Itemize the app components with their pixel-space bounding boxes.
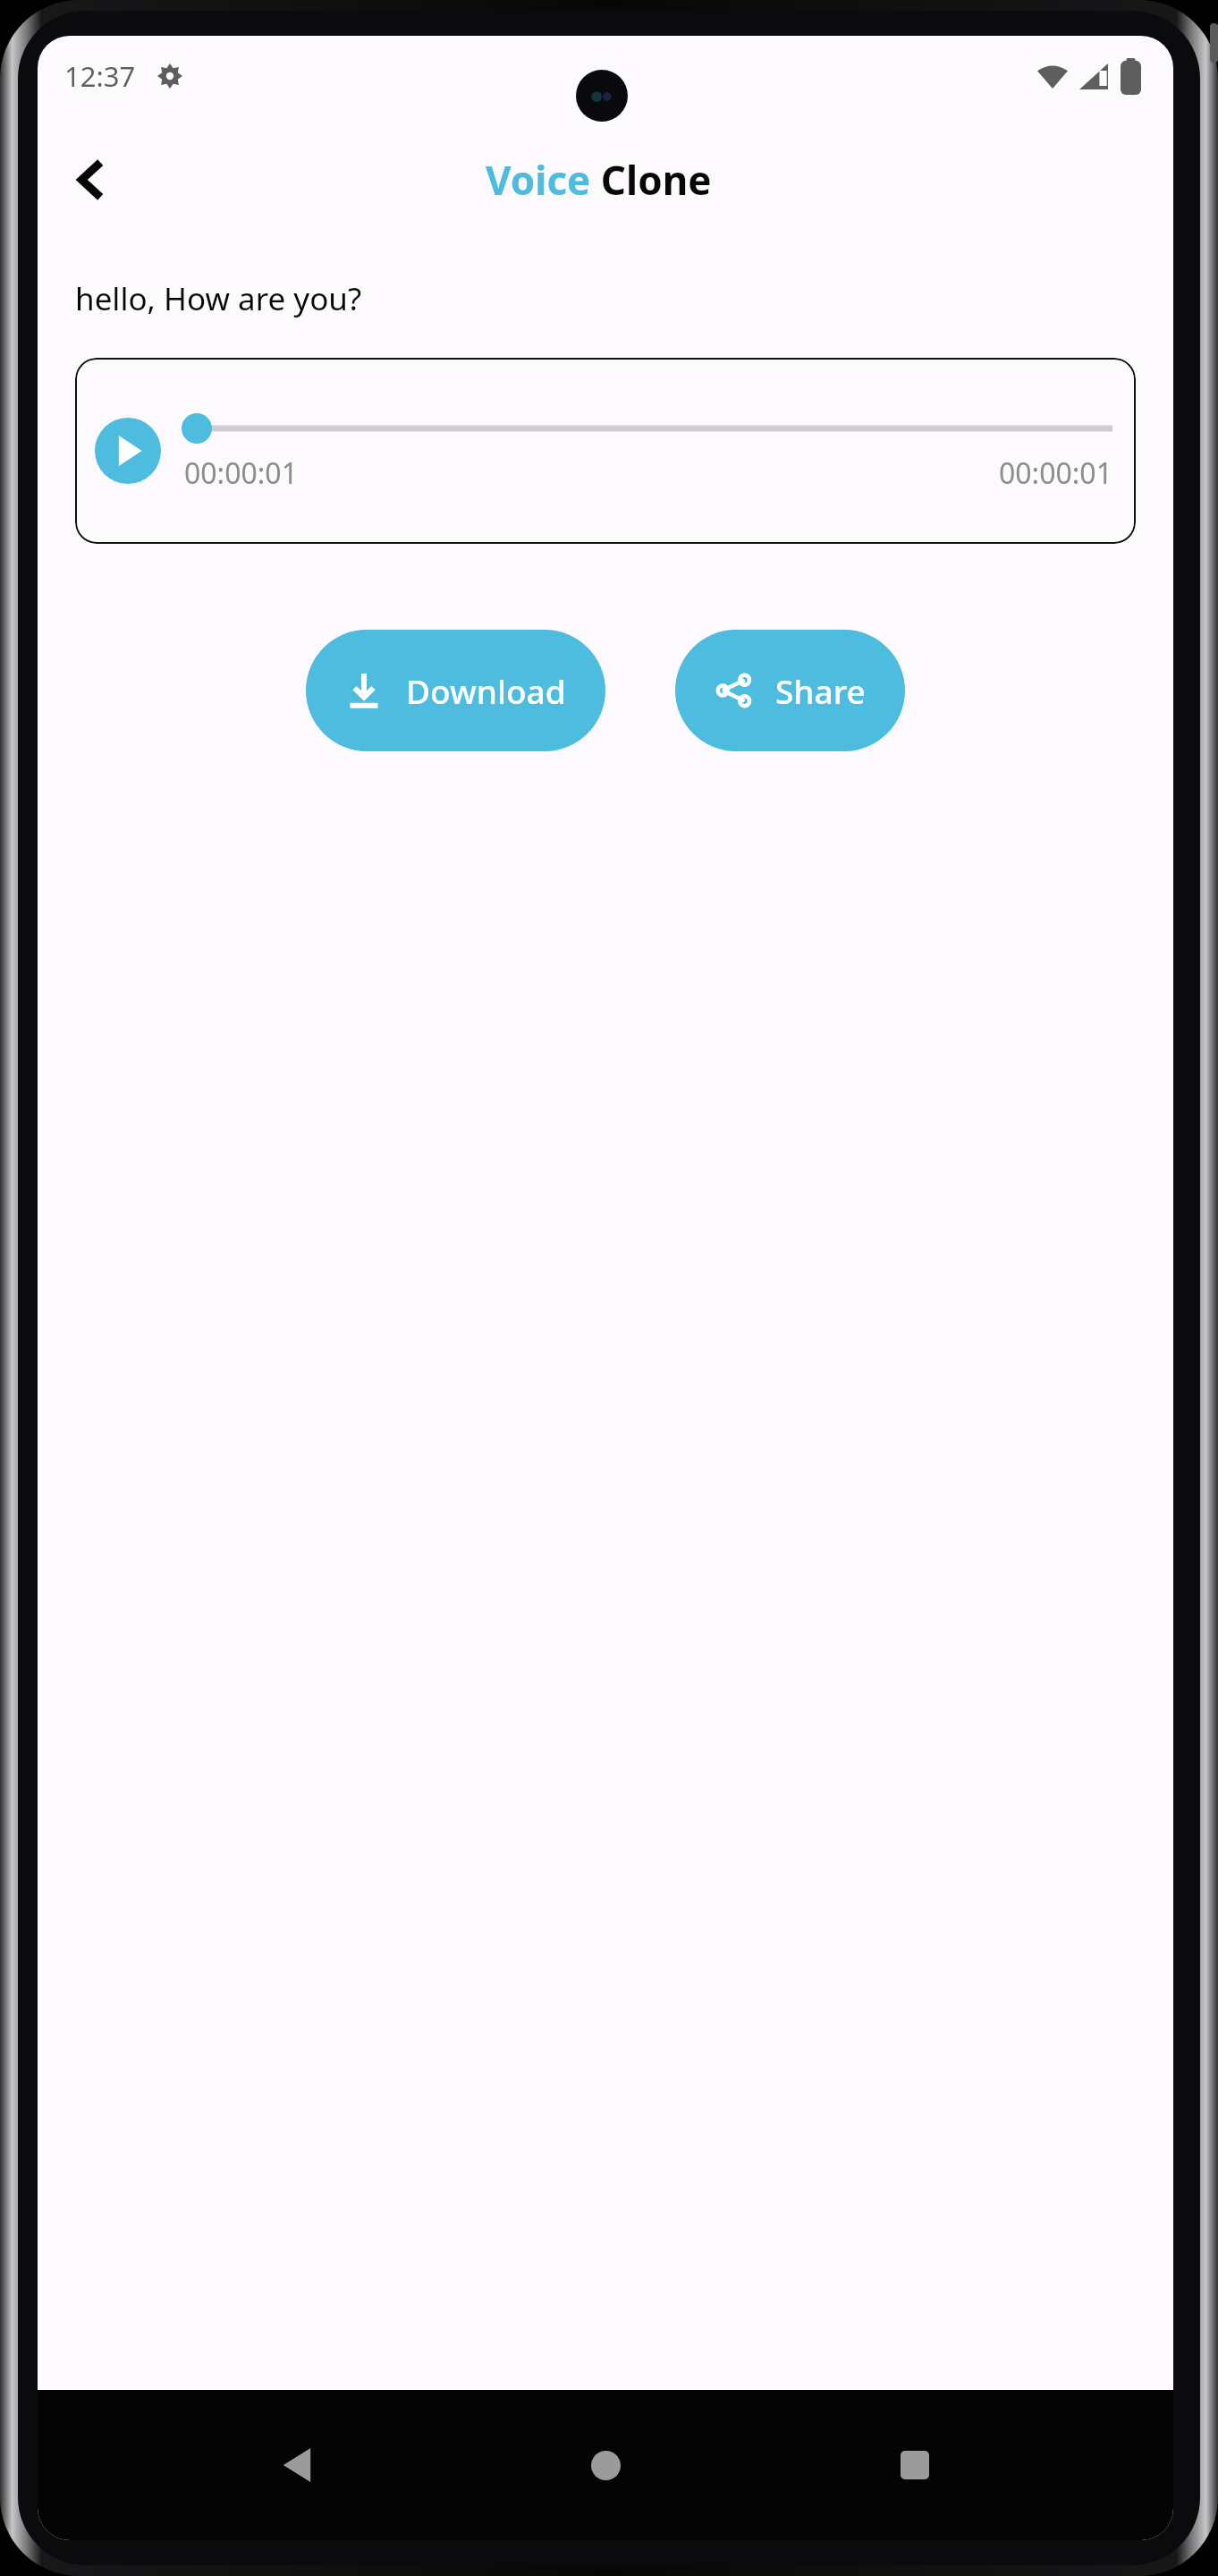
button[interactable]: Share: [675, 630, 905, 751]
staticText: 00:00:01: [184, 453, 298, 493]
button[interactable]: Home: [555, 2415, 656, 2515]
staticText: Share: [775, 668, 866, 713]
staticText: 00:00:01: [999, 453, 1112, 493]
button[interactable]: Back: [247, 2415, 347, 2515]
staticText: hello, How are you?: [75, 277, 362, 320]
button[interactable]: Download: [306, 630, 605, 751]
button[interactable]: Play: [95, 418, 161, 484]
button[interactable]: Recent apps: [865, 2415, 965, 2515]
button[interactable]: Back: [52, 140, 132, 220]
button[interactable]: [184, 409, 1112, 448]
staticText: 12:37: [64, 57, 136, 95]
staticText: Voice Clone: [486, 153, 712, 207]
staticText: Download: [406, 668, 566, 713]
button[interactable]: Play: [75, 358, 1136, 544]
